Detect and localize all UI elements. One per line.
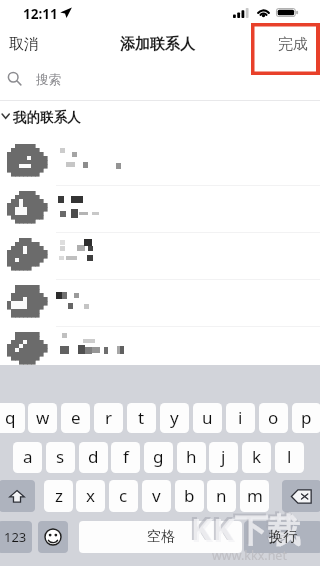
button[interactable]: p	[292, 403, 320, 433]
staticText: r	[105, 406, 113, 429]
staticText: c	[119, 484, 128, 507]
staticText: l	[287, 445, 292, 468]
staticText: j	[221, 445, 226, 468]
staticText: 123	[4, 528, 27, 546]
staticText: 换行	[269, 528, 297, 546]
staticText: v	[152, 484, 161, 507]
staticText: i	[238, 406, 243, 429]
button[interactable]: u	[193, 403, 222, 433]
button[interactable]: 换行	[244, 521, 320, 553]
button[interactable]: n	[207, 480, 236, 512]
button[interactable]: g	[144, 442, 173, 473]
button[interactable]: c	[109, 480, 138, 512]
button[interactable]: a	[13, 442, 42, 473]
button[interactable]: y	[160, 403, 189, 433]
button[interactable]	[0, 234, 320, 281]
staticText: g	[153, 445, 164, 468]
staticText: w	[36, 406, 50, 429]
staticText: www.kkx.net	[212, 547, 287, 564]
button[interactable]	[0, 187, 320, 234]
staticText: m	[247, 484, 263, 507]
staticText: 空格	[147, 528, 175, 546]
staticText: o	[268, 406, 279, 429]
button[interactable]	[0, 281, 320, 328]
staticText: KK下载	[191, 507, 301, 552]
staticText: a	[23, 445, 33, 468]
staticText: h	[186, 445, 197, 468]
button[interactable]: Emoji	[38, 521, 68, 553]
button[interactable]: e	[61, 403, 90, 433]
button[interactable]: d	[79, 442, 108, 473]
button[interactable]: b	[175, 480, 204, 512]
button[interactable]: r	[94, 403, 123, 433]
button[interactable]: v	[142, 480, 171, 512]
button[interactable]: h	[177, 442, 206, 473]
button[interactable]: z	[44, 480, 73, 512]
staticText: 取消	[9, 35, 39, 54]
button[interactable]: l	[275, 442, 304, 473]
staticText: d	[88, 445, 99, 468]
staticText: p	[301, 406, 312, 429]
button[interactable]: t	[127, 403, 156, 433]
button[interactable]	[0, 140, 320, 187]
button[interactable]: Shift	[0, 480, 35, 512]
staticText: u	[202, 406, 213, 429]
button[interactable]: j	[209, 442, 238, 473]
button[interactable]: 123	[0, 521, 32, 553]
staticText: 我的联系人	[13, 109, 81, 126]
staticText: 搜索	[36, 72, 61, 88]
button[interactable]: 搜索	[0, 62, 320, 100]
button[interactable]: f	[111, 442, 140, 473]
button[interactable]: s	[46, 442, 75, 473]
staticText: e	[71, 406, 81, 429]
button[interactable]	[0, 328, 320, 375]
staticText: x	[86, 484, 95, 507]
button[interactable]: 完成	[262, 30, 320, 58]
button[interactable]: 取消	[0, 30, 47, 58]
staticText: b	[184, 484, 195, 507]
staticText: y	[170, 406, 179, 429]
staticText: 完成	[278, 35, 308, 54]
button[interactable]: m	[240, 480, 269, 512]
button[interactable]: 我的联系人	[0, 103, 320, 129]
button[interactable]: q	[0, 403, 25, 433]
staticText: f	[123, 445, 129, 468]
button[interactable]: Backspace	[282, 480, 320, 512]
staticText: q	[5, 406, 16, 429]
staticText: 添加联系人	[120, 35, 195, 54]
button[interactable]: 空格	[79, 521, 242, 553]
staticText: 换行	[269, 528, 297, 546]
button[interactable]: k	[242, 442, 271, 473]
button[interactable]: x	[76, 480, 105, 512]
staticText: n	[216, 484, 227, 507]
button[interactable]: o	[259, 403, 288, 433]
staticText: KK下载	[189, 505, 299, 550]
staticText: t	[138, 406, 145, 429]
button[interactable]: w	[28, 403, 57, 433]
staticText: 12:11	[23, 5, 58, 23]
button[interactable]: i	[226, 403, 255, 433]
staticText: s	[56, 445, 65, 468]
staticText: z	[55, 484, 63, 507]
staticText: k	[252, 445, 262, 468]
